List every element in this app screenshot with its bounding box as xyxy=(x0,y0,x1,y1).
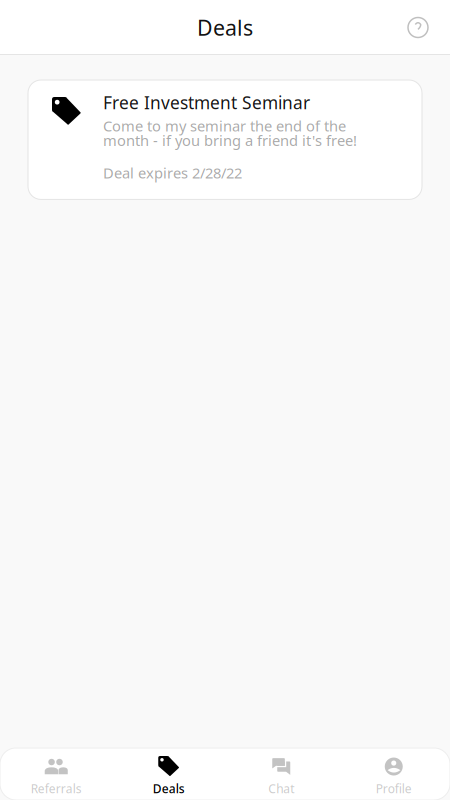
button[interactable]: Help xyxy=(394,4,450,50)
staticText: Deal expires 2/28/22 xyxy=(103,163,242,182)
staticText: Free Investment Seminar xyxy=(103,91,310,114)
button[interactable]: Chat xyxy=(225,744,337,800)
staticText: Referrals xyxy=(31,780,82,796)
button[interactable]: Referrals xyxy=(0,744,112,800)
button[interactable]: Profile xyxy=(337,744,450,800)
button[interactable]: Deals xyxy=(112,744,225,800)
staticText: Deals xyxy=(153,780,185,796)
staticText: Come to my seminar the end of the month … xyxy=(103,116,357,150)
staticText: Chat xyxy=(268,780,294,796)
staticText: Profile xyxy=(376,780,412,796)
staticText: Deals xyxy=(197,13,253,42)
button[interactable]: Free Investment Seminar xyxy=(28,80,422,199)
